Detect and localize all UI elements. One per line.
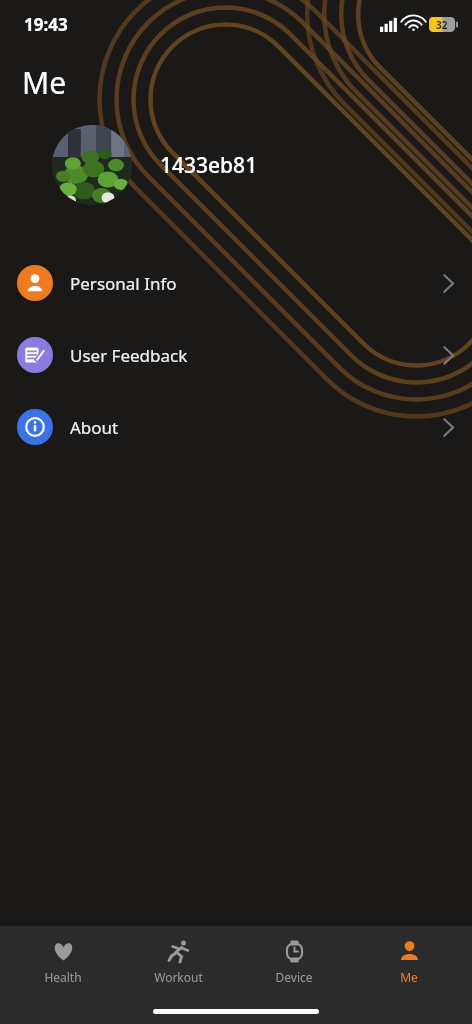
staticText: 32 [436,18,448,32]
staticText: Me [22,62,67,103]
button[interactable]: Device [242,933,346,991]
staticText: Device [275,969,313,985]
staticText: 19:43 [24,13,68,36]
button[interactable]: Health [11,933,115,991]
staticText: About [70,416,119,439]
button[interactable]: Me [357,933,461,991]
button[interactable]: Personal Info [0,247,472,319]
staticText: Personal Info [70,272,177,295]
staticText: User Feedback [70,344,188,367]
staticText: Workout [154,969,203,985]
button[interactable]: Workout [126,933,230,991]
button[interactable]: 1433eb81 [0,125,472,205]
staticText: Me [400,969,418,985]
button[interactable]: About [0,391,472,463]
button[interactable]: User Feedback [0,319,472,391]
staticText: 1433eb81 [160,151,258,180]
staticText: Health [44,969,82,985]
